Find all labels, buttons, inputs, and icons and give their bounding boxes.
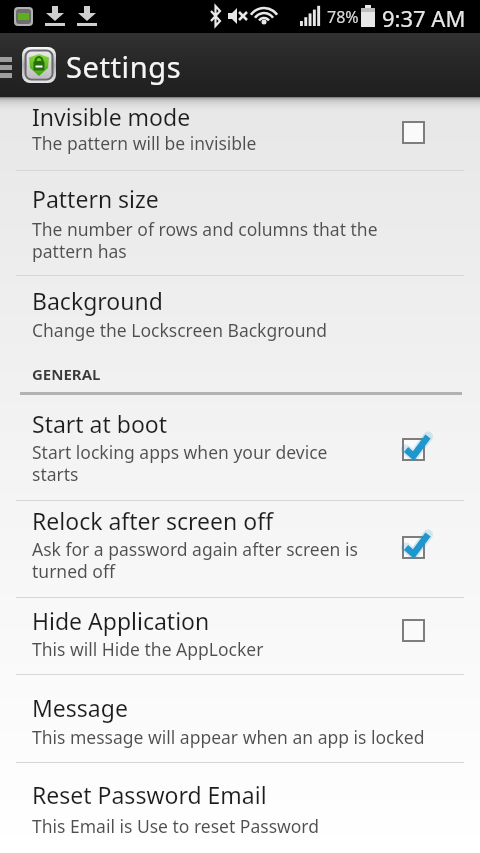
button[interactable] bbox=[0, 97, 480, 170]
staticText: This Email is Use to reset Password bbox=[32, 814, 319, 838]
staticText: Relock after screen off bbox=[32, 505, 273, 536]
staticText: The pattern will be invisible bbox=[32, 131, 257, 155]
staticText: Change the Lockscreen Background bbox=[32, 318, 328, 342]
staticText: turned off bbox=[32, 559, 115, 583]
staticText: Start at boot bbox=[32, 408, 168, 439]
staticText: Message bbox=[32, 692, 128, 723]
staticText: This will Hide the AppLocker bbox=[32, 637, 264, 661]
staticText: 78% bbox=[327, 6, 359, 28]
button[interactable] bbox=[0, 276, 480, 380]
staticText: The number of rows and columns that the bbox=[32, 217, 378, 241]
staticText: 9:37 AM bbox=[382, 3, 466, 33]
button[interactable] bbox=[0, 764, 480, 853]
staticText: Hide Application bbox=[32, 605, 210, 636]
staticText: Pattern size bbox=[32, 183, 159, 214]
staticText: Settings bbox=[66, 47, 182, 86]
staticText: Invisible mode bbox=[32, 101, 191, 132]
staticText: pattern has bbox=[32, 239, 127, 263]
staticText: Start locking apps when your device bbox=[32, 440, 328, 464]
staticText: starts bbox=[32, 462, 79, 486]
button[interactable] bbox=[0, 675, 480, 763]
staticText: Background bbox=[32, 285, 163, 316]
staticText: This message will appear when an app is … bbox=[32, 725, 425, 749]
button[interactable] bbox=[0, 501, 480, 597]
staticText: Reset Password Email bbox=[32, 779, 267, 810]
staticText: GENERAL bbox=[32, 364, 101, 384]
button[interactable] bbox=[0, 171, 480, 275]
button[interactable] bbox=[0, 598, 480, 674]
staticText: Ask for a password again after screen is bbox=[32, 537, 358, 561]
button[interactable] bbox=[0, 396, 480, 500]
